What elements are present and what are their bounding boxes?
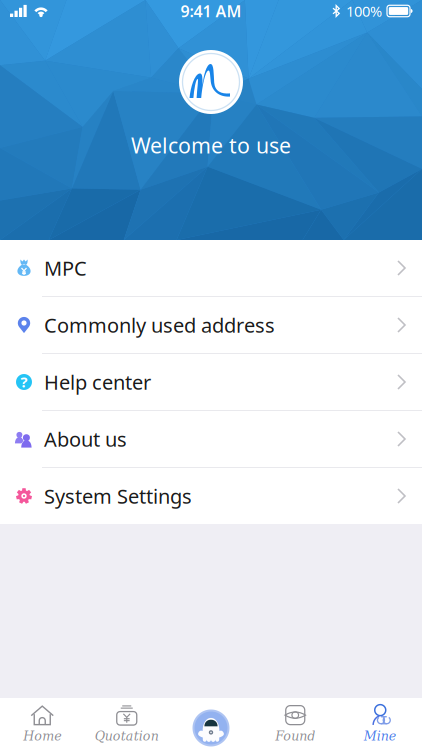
button[interactable]: Mine [337,698,422,750]
button[interactable]: Assistant [192,709,229,746]
staticText: MPC [44,255,87,281]
staticText: 9:41 AM [180,0,241,22]
staticText: Commonly used address [44,312,275,338]
button[interactable]: Home [0,698,84,750]
button[interactable]: Quotation [84,698,169,750]
staticText: System Settings [44,483,192,509]
staticText: About us [44,426,127,452]
staticText: Help center [44,369,151,395]
staticText: Found [275,729,315,743]
staticText: Welcome to use [131,131,291,159]
staticText: Quotation [95,729,159,743]
staticText: ? [20,372,27,391]
button[interactable]: MPC [0,240,422,297]
button[interactable]: System Settings [0,468,422,524]
staticText: Home [23,729,61,743]
staticText: 100% [346,1,382,21]
staticText: Mine [364,729,396,743]
button[interactable]: About us [0,411,422,468]
button[interactable]: Commonly used address [0,297,422,354]
button[interactable]: ? [0,354,422,411]
button[interactable]: Found [253,698,337,750]
